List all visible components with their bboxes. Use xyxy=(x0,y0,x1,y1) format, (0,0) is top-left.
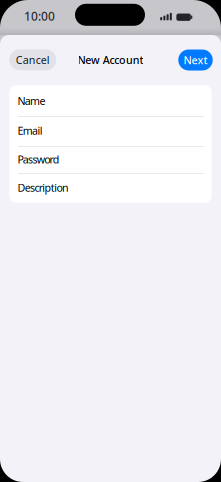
staticText: Password xyxy=(17,152,60,166)
button[interactable]: Cancel xyxy=(9,49,56,70)
staticText: Description xyxy=(17,180,69,195)
button[interactable]: Name xyxy=(9,86,212,115)
button[interactable]: Next xyxy=(178,49,213,70)
staticText: Next xyxy=(183,53,207,67)
staticText: Cancel xyxy=(16,53,50,67)
button[interactable]: Password xyxy=(9,145,212,174)
staticText: Email xyxy=(17,123,43,138)
staticText: 10:00 xyxy=(24,8,55,24)
button[interactable]: Email xyxy=(9,116,212,145)
staticText: New Account xyxy=(77,53,143,67)
button[interactable]: Description xyxy=(9,173,212,202)
staticText: Name xyxy=(17,94,45,108)
